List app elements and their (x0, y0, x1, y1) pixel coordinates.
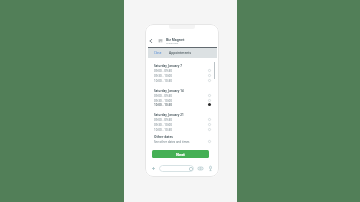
staticText: 10:00 - 10:30 (154, 128, 172, 132)
button[interactable]: 09:30 - 10:00 (154, 73, 211, 78)
staticText: 09:00 - 09:30 (154, 94, 172, 98)
button[interactable]: Add attachment (151, 166, 156, 171)
staticText: Biz Magnet (166, 37, 185, 41)
button[interactable]: 10:00 - 10:30 (154, 127, 211, 132)
button[interactable]: See other dates and times (154, 139, 211, 144)
staticText: Saturday, January 7 (154, 64, 182, 68)
staticText: 09:30 - 10:00 (154, 99, 172, 103)
staticText: Saturday, January 21 (154, 113, 184, 117)
staticText: Active now (166, 41, 179, 44)
staticText: 09:30 - 10:00 (154, 123, 172, 127)
button[interactable]: 10:00 - 10:30 (154, 102, 211, 107)
staticText: 09:00 - 09:30 (154, 69, 172, 73)
button[interactable]: Voice message (206, 164, 214, 172)
button[interactable]: Back (147, 37, 155, 45)
button[interactable]: 09:30 - 10:00 (154, 98, 211, 103)
staticText: Next (176, 152, 185, 157)
button[interactable]: 09:00 - 09:30 (154, 68, 211, 73)
button[interactable] (159, 165, 194, 172)
button[interactable]: 09:30 - 10:00 (154, 122, 211, 127)
staticText: 09:00 - 09:30 (154, 118, 172, 122)
staticText: Close (154, 51, 162, 55)
staticText: 10:00 - 10:30 (154, 103, 172, 107)
staticText: 10:00 - 10:30 (154, 79, 172, 83)
button[interactable]: 09:00 - 09:30 (154, 93, 211, 98)
staticText: Appointments (169, 51, 192, 55)
button[interactable]: Camera (196, 164, 204, 172)
button[interactable]: Next (152, 150, 209, 158)
staticText: 09:30 - 10:00 (154, 74, 172, 78)
button[interactable]: 10:00 - 10:30 (154, 78, 211, 83)
staticText: See other dates and times (154, 140, 190, 144)
button[interactable]: 09:00 - 09:30 (154, 117, 211, 122)
staticText: Other dates (154, 135, 173, 139)
staticText: Saturday, January 14 (154, 89, 184, 93)
button[interactable]: Close (154, 51, 162, 55)
